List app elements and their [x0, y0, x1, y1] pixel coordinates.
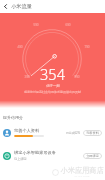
- button[interactable]: 绑定小米智能家居设备: [3, 144, 102, 167]
- staticText: 650: [65, 23, 71, 27]
- button[interactable]: 立即绑定: [86, 154, 99, 158]
- staticText: 750: [84, 45, 90, 49]
- button[interactable]: Back: [0, 0, 11, 13]
- staticText: 350: [24, 75, 30, 79]
- staticText: 提升信用分: [3, 115, 23, 120]
- staticText: 小米应用商店: [60, 166, 104, 175]
- button[interactable]: 完善个人资料: [3, 121, 102, 144]
- staticText: 完善个人资料: [14, 128, 60, 133]
- staticText: 950: [74, 75, 80, 79]
- staticText: 立即绑定: [86, 154, 99, 158]
- button[interactable]: 完善资料: [86, 131, 99, 135]
- staticText: 已完成62%: [66, 131, 80, 135]
- staticText: 优于一般: [46, 84, 60, 88]
- staticText: MI APP STORE: [74, 175, 90, 178]
- staticText: 感谢您对提高社会信用体系建设做出的贡献: [24, 90, 81, 94]
- staticText: 绑定小米智能家居设备: [14, 150, 60, 155]
- staticText: 354: [40, 64, 65, 84]
- staticText: 小米流量: [11, 3, 32, 10]
- staticText: 马上绑定: [14, 157, 60, 161]
- staticText: 450: [17, 45, 23, 49]
- staticText: 完善资料: [86, 131, 99, 135]
- staticText: 550: [33, 23, 39, 27]
